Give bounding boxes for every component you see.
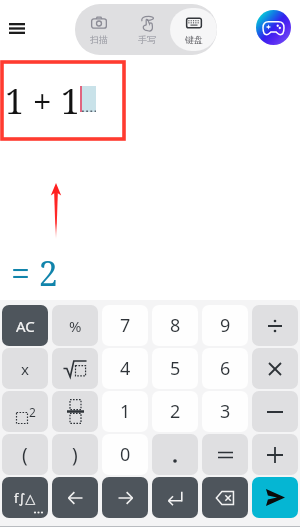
staticText: ( (22, 442, 28, 468)
staticText: 扫描 (90, 34, 108, 45)
button[interactable]: Profile (256, 10, 291, 45)
button[interactable]: ) (52, 434, 98, 475)
staticText: 5 (170, 356, 181, 381)
button[interactable]: Left (52, 477, 98, 518)
button[interactable]: % (52, 305, 98, 346)
button[interactable]: Right (102, 477, 148, 518)
staticText: % (69, 316, 82, 336)
staticText: 6 (220, 356, 231, 381)
staticText: = 2 (11, 250, 58, 296)
button[interactable]: 4 (102, 348, 148, 389)
button[interactable]: Send (252, 477, 298, 518)
other: Delete (216, 491, 234, 505)
button[interactable]: ( (2, 434, 48, 475)
staticText: f∫△ (14, 489, 36, 507)
staticText: 4 (120, 356, 131, 381)
staticText: 2 (29, 404, 36, 420)
staticText: 9 (220, 313, 231, 338)
staticText: 手写 (138, 34, 156, 45)
button[interactable]: x (2, 348, 48, 389)
button[interactable] (252, 391, 298, 432)
staticText: 1 (120, 399, 131, 424)
button[interactable] (152, 434, 198, 475)
button[interactable]: 6 (202, 348, 248, 389)
staticText: 0 (120, 442, 131, 467)
button[interactable]: 8 (152, 305, 198, 346)
button[interactable]: 2 (152, 391, 198, 432)
other: Left (68, 491, 83, 505)
staticText: ) (72, 442, 78, 468)
button[interactable] (252, 348, 298, 389)
button[interactable]: 2 (2, 391, 48, 432)
staticText: 键盘 (185, 34, 203, 45)
button[interactable]: 手写 (123, 8, 170, 51)
other: Enter (168, 490, 183, 505)
other: Send (266, 489, 285, 506)
other: Right (118, 491, 133, 505)
button[interactable]: 9 (202, 305, 248, 346)
button[interactable]: 1 (102, 391, 148, 432)
staticText: AC (16, 316, 35, 336)
staticText: x (21, 359, 29, 379)
button[interactable]: 1 + 1 (2, 62, 124, 139)
button[interactable]: AC (2, 305, 48, 346)
button[interactable]: 键盘 (170, 8, 217, 51)
button[interactable] (52, 391, 98, 432)
button[interactable] (252, 434, 298, 475)
button[interactable]: 3 (202, 391, 248, 432)
staticText: 8 (170, 313, 181, 338)
button[interactable]: f∫△ (2, 477, 48, 518)
button[interactable]: Menu (1, 12, 33, 44)
button[interactable]: Enter (152, 477, 198, 518)
button[interactable] (202, 434, 248, 475)
button[interactable] (252, 305, 298, 346)
button[interactable]: 7 (102, 305, 148, 346)
staticText: 1 + 1 (5, 78, 80, 124)
button[interactable]: 5 (152, 348, 198, 389)
button[interactable] (52, 348, 98, 389)
staticText: 7 (120, 313, 131, 338)
button[interactable]: 0 (102, 434, 148, 475)
button[interactable]: Delete (202, 477, 248, 518)
button[interactable]: 扫描 (75, 8, 123, 51)
staticText: 3 (220, 399, 231, 424)
staticText: 2 (170, 399, 181, 424)
